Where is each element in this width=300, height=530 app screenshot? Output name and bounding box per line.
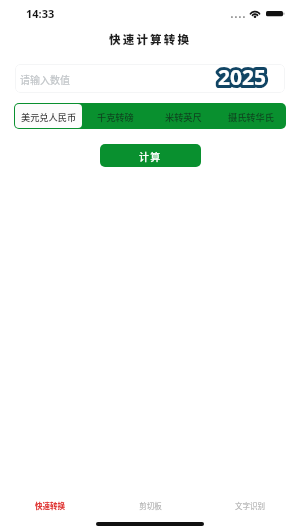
button[interactable]: 文字识别 [200, 492, 300, 518]
button[interactable]: 快速转换 [0, 492, 100, 518]
staticText: 剪切板 [139, 500, 162, 511]
button[interactable]: 计算 [100, 144, 201, 167]
button[interactable]: 剪切板 [100, 492, 200, 518]
button[interactable]: 米转英尺 [149, 104, 217, 128]
staticText: 千克转磅 [97, 110, 134, 123]
staticText: 2025 [218, 64, 267, 92]
button[interactable]: 美元兑人民币 [15, 104, 82, 128]
button[interactable]: 千克转磅 [82, 104, 149, 128]
staticText: 快速计算转换 [109, 31, 192, 48]
staticText: 摄氏转华氏 [228, 110, 274, 123]
staticText: 文字识别 [235, 500, 265, 511]
button[interactable]: 摄氏转华氏 [217, 104, 285, 128]
staticText: 米转英尺 [165, 110, 202, 123]
button[interactable]: 请输入数值 [15, 64, 285, 93]
staticText: 请输入数值 [20, 72, 70, 86]
staticText: 美元兑人民币 [21, 110, 77, 123]
staticText: 计算 [139, 149, 162, 163]
staticText: 快速转换 [35, 500, 65, 511]
staticText: 2025 [218, 64, 267, 92]
staticText: 14:33 [26, 6, 55, 21]
